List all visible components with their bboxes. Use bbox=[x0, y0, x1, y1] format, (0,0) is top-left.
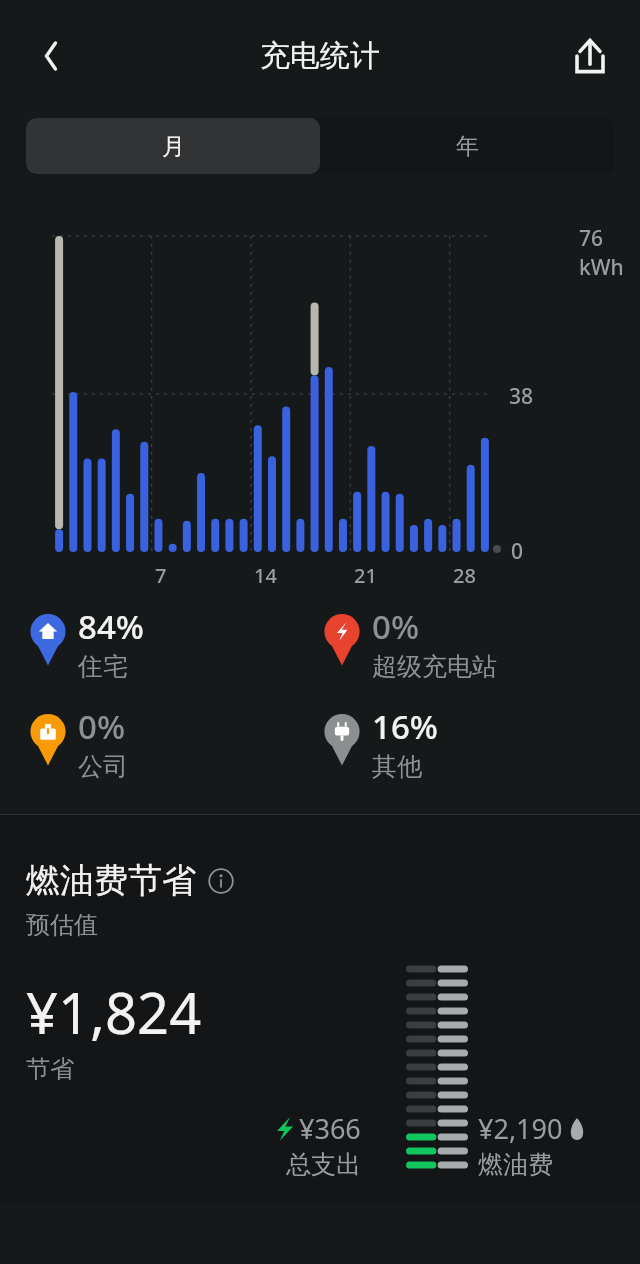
button[interactable]: Share bbox=[564, 30, 616, 82]
button[interactable]: 燃油费节省 bbox=[26, 859, 234, 902]
button[interactable]: 0% bbox=[26, 704, 320, 782]
button[interactable]: 84% bbox=[26, 604, 320, 682]
staticText: ¥1,824 bbox=[26, 974, 202, 1050]
staticText: 年 bbox=[456, 132, 479, 161]
staticText: 28 bbox=[453, 562, 476, 589]
staticText: 21 bbox=[354, 562, 377, 589]
staticText: 14 bbox=[254, 562, 277, 589]
staticText: 其他 bbox=[372, 751, 422, 782]
staticText: 总支出 bbox=[286, 1149, 361, 1180]
button[interactable]: 16% bbox=[320, 704, 614, 782]
staticText: 76 bbox=[579, 224, 604, 253]
button[interactable]: Back bbox=[26, 32, 74, 80]
staticText: 84% bbox=[78, 604, 144, 649]
staticText: ¥366 bbox=[299, 1110, 361, 1147]
staticText: 燃油费 bbox=[478, 1149, 553, 1180]
staticText: 预估值 bbox=[26, 910, 98, 940]
staticText: 0 bbox=[511, 537, 524, 566]
other: Info bbox=[208, 868, 234, 894]
staticText: ¥2,190 bbox=[478, 1110, 563, 1147]
staticText: 7 bbox=[155, 562, 167, 589]
staticText: 0% bbox=[372, 604, 419, 649]
staticText: kWh bbox=[579, 253, 624, 282]
button[interactable]: 年 bbox=[320, 118, 614, 174]
staticText: 0% bbox=[78, 704, 125, 749]
staticText: 燃油费节省 bbox=[26, 859, 196, 902]
staticText: 月 bbox=[162, 132, 185, 161]
staticText: 38 bbox=[509, 382, 534, 411]
staticText: 住宅 bbox=[78, 651, 128, 682]
button[interactable]: 月 bbox=[26, 118, 320, 174]
button[interactable]: 0% bbox=[320, 604, 614, 682]
staticText: 16% bbox=[372, 704, 438, 749]
staticText: 充电统计 bbox=[260, 37, 380, 75]
staticText: 公司 bbox=[78, 751, 128, 782]
staticText: 节省 bbox=[26, 1054, 74, 1084]
staticText: 超级充电站 bbox=[372, 651, 497, 682]
